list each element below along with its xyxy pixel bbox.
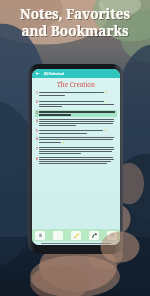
staticText: 8 bbox=[36, 157, 38, 161]
button[interactable]: 8 bbox=[36, 157, 116, 164]
button[interactable]: Back bbox=[34, 70, 41, 77]
button[interactable]: 3 bbox=[36, 111, 116, 116]
button[interactable]: 1 bbox=[36, 91, 116, 96]
staticText: (6) Selected bbox=[44, 71, 64, 76]
staticText: 7 bbox=[36, 147, 38, 151]
staticText: 1 bbox=[36, 91, 38, 95]
button[interactable]: 5 bbox=[36, 129, 116, 134]
staticText: 4 bbox=[36, 119, 38, 123]
button[interactable]: Add note bbox=[35, 231, 45, 240]
staticText: Notes, Favorites and Bookmarks bbox=[6, 5, 144, 40]
staticText: 6 bbox=[36, 137, 38, 141]
button[interactable]: Bookmark bbox=[107, 231, 117, 240]
button[interactable]: 7 bbox=[36, 147, 116, 154]
button[interactable]: 4 bbox=[36, 119, 116, 126]
button[interactable]: Favorite bbox=[53, 231, 63, 240]
button[interactable]: 6 bbox=[36, 137, 116, 144]
button[interactable]: Highlight bbox=[71, 231, 81, 240]
button[interactable]: 2 bbox=[36, 100, 116, 107]
staticText: 2 bbox=[36, 100, 38, 104]
staticText: Notes, Favorites and Bookmarks bbox=[7, 6, 145, 41]
staticText: 3 bbox=[36, 111, 38, 115]
button[interactable]: Share bbox=[89, 231, 99, 240]
staticText: 5 bbox=[36, 129, 38, 133]
staticText: The Creation bbox=[35, 80, 117, 88]
